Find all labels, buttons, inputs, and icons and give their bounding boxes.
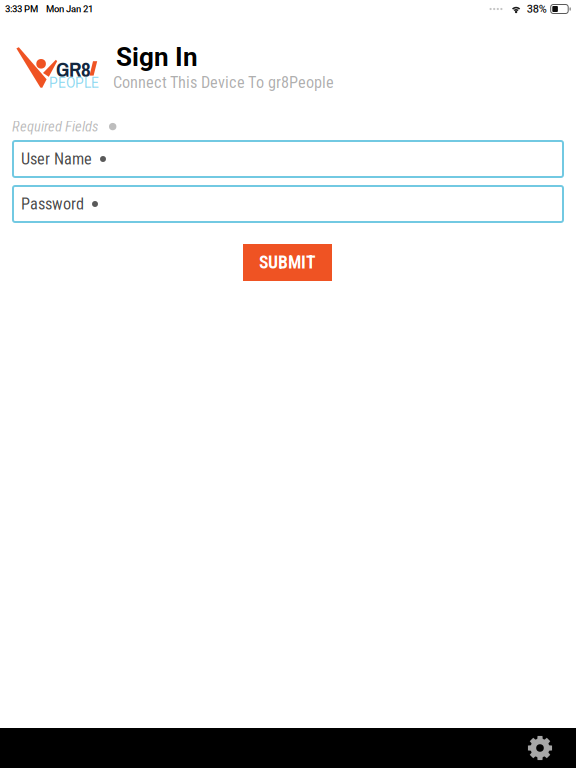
staticText: Required Fields <box>12 118 98 135</box>
button[interactable]: SUBMIT <box>243 244 332 281</box>
staticText: Password <box>21 194 84 214</box>
button[interactable]: User Name <box>13 141 563 177</box>
staticText: Sign In <box>116 42 198 72</box>
staticText: Connect This Device To gr8People <box>113 73 334 92</box>
staticText: User Name <box>21 149 92 169</box>
staticText: SUBMIT <box>259 252 316 273</box>
staticText: 38% <box>527 3 547 15</box>
staticText: PEOPLE <box>49 75 99 91</box>
button[interactable]: Settings <box>527 735 553 761</box>
button[interactable]: Password <box>13 186 563 222</box>
staticText: 3:33 PM <box>5 3 38 15</box>
staticText: GR8 <box>56 55 91 83</box>
staticText: Mon Jan 21 <box>46 3 93 15</box>
